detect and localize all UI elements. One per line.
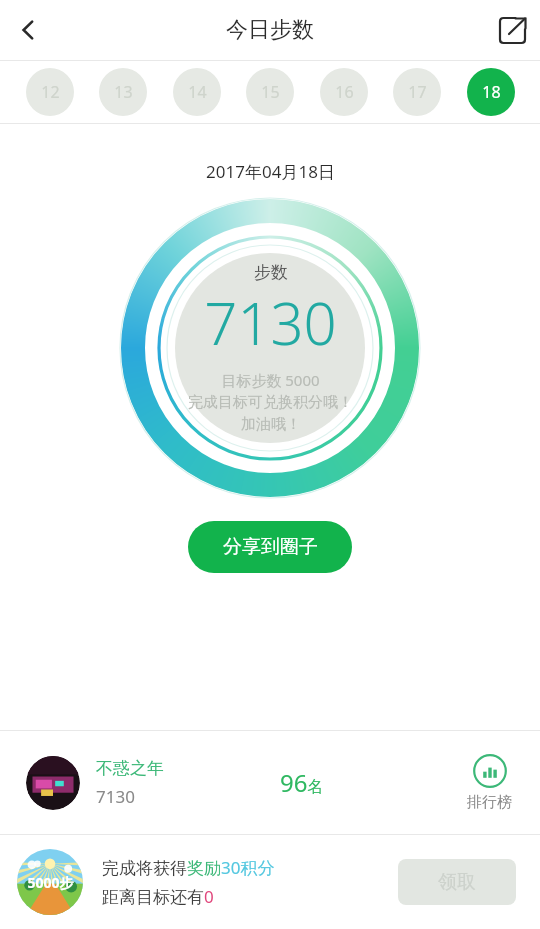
- button[interactable]: 14: [173, 68, 221, 116]
- staticText: 15: [261, 81, 280, 103]
- staticText: 5000步: [27, 873, 74, 892]
- staticText: 12: [41, 81, 60, 103]
- button[interactable]: 领取: [398, 859, 516, 905]
- button[interactable]: Back: [0, 2, 56, 58]
- staticText: 16: [335, 81, 354, 103]
- button[interactable]: 12: [26, 68, 74, 116]
- staticText: 完成目标可兑换积分哦！: [188, 393, 353, 412]
- staticText: 不惑之年: [96, 758, 164, 779]
- staticText: 排行榜: [467, 793, 512, 812]
- button[interactable]: 排行榜: [463, 754, 516, 812]
- staticText: 完成将获得奖励30积分: [102, 856, 275, 879]
- staticText: 18: [482, 81, 501, 103]
- staticText: 步数: [254, 262, 288, 283]
- button[interactable]: Share: [484, 2, 540, 58]
- staticText: 领取: [438, 870, 476, 894]
- staticText: 加油哦！: [241, 415, 301, 434]
- staticText: 17: [408, 81, 427, 103]
- staticText: 距离目标还有0: [102, 885, 214, 908]
- staticText: 目标步数 5000: [221, 370, 320, 390]
- button[interactable]: 18: [467, 68, 515, 116]
- staticText: 7130: [96, 785, 135, 808]
- staticText: 7130: [204, 283, 337, 362]
- button[interactable]: 不惑之年: [0, 731, 540, 834]
- staticText: 今日步数: [226, 16, 314, 44]
- staticText: 2017年04月18日: [206, 160, 335, 183]
- staticText: 分享到圈子: [223, 535, 318, 559]
- button[interactable]: 16: [320, 68, 368, 116]
- button[interactable]: 分享到圈子: [188, 521, 352, 573]
- staticText: 96名: [280, 766, 324, 799]
- button[interactable]: 17: [393, 68, 441, 116]
- button[interactable]: 15: [246, 68, 294, 116]
- staticText: 14: [188, 81, 207, 103]
- staticText: 13: [114, 81, 133, 103]
- button[interactable]: 13: [99, 68, 147, 116]
